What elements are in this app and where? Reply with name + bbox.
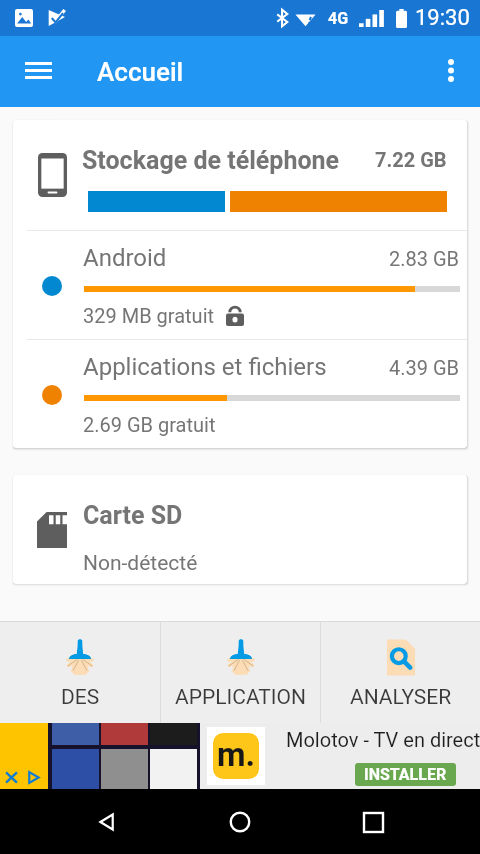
staticText: DES [61,685,100,710]
button[interactable]: Carte SD [13,475,467,584]
button[interactable]: Back [81,796,133,848]
staticText: 2.69 GB gratuit [83,413,216,436]
staticText: 2.83 GB [389,247,460,270]
button[interactable]: APPLICATION [161,621,320,723]
staticText: 4.39 GB [389,356,460,379]
button[interactable]: Stockage de téléphone [13,120,467,230]
staticText: Applications et fichiers [83,353,327,381]
button[interactable]: Close ad [3,769,20,786]
button[interactable]: INSTALLER [355,763,456,786]
staticText: Accueil [97,57,184,87]
button[interactable]: Open navigation drawer [10,44,66,100]
button[interactable]: DES [0,621,160,723]
staticText: ... [286,751,468,774]
button[interactable]: Android [13,231,467,339]
staticText: Carte SD [83,501,183,530]
staticText: m. [217,735,256,774]
staticText: 329 MB gratuit [83,304,215,327]
staticText: 7.22 GB [375,148,447,171]
button[interactable]: Applications et fichiers [13,340,467,448]
staticText: Non-détecté [83,551,198,576]
staticText: Molotov - TV en direct et [286,728,480,751]
staticText: 4G [328,9,349,28]
staticText: 19:30 [415,5,470,31]
staticText: INSTALLER [364,765,447,784]
staticText: Android [83,244,167,272]
staticText: APPLICATION [175,685,306,710]
button[interactable]: Recents [347,796,399,848]
button[interactable]: More options [425,44,477,96]
button[interactable]: ANALYSER [321,621,480,723]
staticText: Stockage de téléphone [82,146,340,175]
button[interactable]: Home [214,796,266,848]
staticText: ANALYSER [350,685,452,710]
button[interactable]: Ad info [25,769,42,786]
